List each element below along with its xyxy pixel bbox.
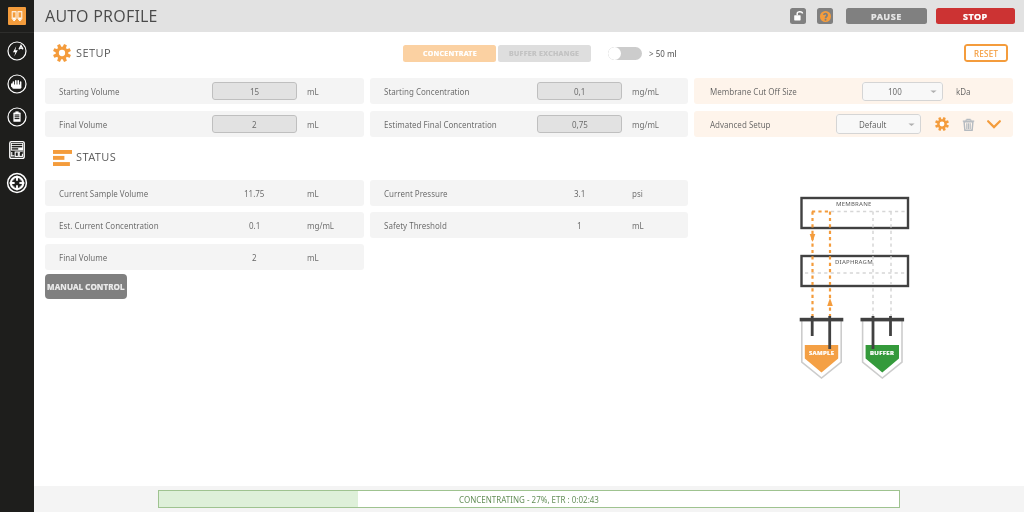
staticText: mL <box>307 188 319 199</box>
button[interactable]: Starting Volume <box>45 78 364 104</box>
button[interactable]: Est. Current Concentration <box>45 212 364 238</box>
staticText: CONCENTRATE <box>423 49 477 59</box>
staticText: PAUSE <box>871 10 902 22</box>
button[interactable]: Final Volume <box>45 244 364 270</box>
staticText: Final Volume <box>59 119 108 130</box>
button[interactable]: Safety Threshold <box>370 212 688 238</box>
staticText: RESET <box>974 48 999 59</box>
button[interactable]: Settings <box>0 166 34 199</box>
button[interactable]: Auto Profile <box>0 0 34 32</box>
button[interactable]: Membrane Cut Off Size <box>694 78 1013 104</box>
staticText: psi <box>632 188 643 199</box>
staticText: STOP <box>963 10 988 22</box>
button[interactable]: Current Sample Volume <box>45 180 364 206</box>
staticText: Safety Threshold <box>384 220 447 231</box>
staticText: Est. Current Concentration <box>59 220 159 231</box>
staticText: 0,1 <box>574 86 586 97</box>
staticText: BUFFER EXCHANGE <box>509 49 580 59</box>
button[interactable]: Expand <box>984 114 1004 134</box>
button[interactable]: Configure <box>932 114 952 134</box>
staticText: 100 <box>888 86 902 97</box>
staticText: Current Sample Volume <box>59 188 149 199</box>
button[interactable]: Estimated Final Concentration <box>370 111 688 137</box>
staticText: 15 <box>250 86 260 97</box>
staticText: mL <box>307 86 319 97</box>
button[interactable]: Current Pressure <box>370 180 688 206</box>
staticText: 0.1 <box>249 220 261 231</box>
staticText: Advanced Setup <box>710 119 771 130</box>
button[interactable]: Log <box>0 133 34 166</box>
staticText: Default <box>859 119 887 130</box>
staticText: DIAPHRAGM <box>835 258 873 266</box>
button[interactable]: Volume toggle <box>608 47 642 60</box>
staticText: 11.75 <box>244 188 265 199</box>
button[interactable]: Lock <box>790 8 806 24</box>
staticText: STATUS <box>76 149 117 164</box>
staticText: Current Pressure <box>384 188 448 199</box>
button[interactable]: Final Volume <box>45 111 364 137</box>
staticText: mg/mL <box>632 86 660 97</box>
button[interactable]: Help <box>817 8 833 24</box>
staticText: mL <box>307 119 319 130</box>
button[interactable]: STOP <box>936 8 1015 24</box>
staticText: 0,75 <box>572 119 588 130</box>
staticText: MEMBRANE <box>836 200 872 208</box>
staticText: mL <box>307 252 319 263</box>
staticText: 1 <box>577 220 582 231</box>
staticText: > 50 ml <box>649 48 677 59</box>
button[interactable]: CONCENTRATE <box>403 45 496 62</box>
button[interactable]: Auto <box>0 34 34 67</box>
staticText: Membrane Cut Off Size <box>710 86 797 97</box>
button[interactable]: PAUSE <box>846 8 927 24</box>
staticText: AUTO PROFILE <box>45 5 158 27</box>
button[interactable]: BUFFER EXCHANGE <box>498 45 591 62</box>
staticText: mL <box>632 220 644 231</box>
button[interactable]: Protocols <box>0 100 34 133</box>
button[interactable]: Starting Concentration <box>370 78 688 104</box>
staticText: 2 <box>252 252 257 263</box>
button[interactable]: Advanced preset <box>836 114 921 134</box>
staticText: Final Volume <box>59 252 108 263</box>
staticText: mg/mL <box>307 220 335 231</box>
staticText: Starting Volume <box>59 86 120 97</box>
button[interactable]: Delete <box>958 114 978 134</box>
staticText: Estimated Final Concentration <box>384 119 497 130</box>
staticText: BUFFER <box>870 349 895 357</box>
staticText: CONCENTRATING - 27%, ETR : 0:02:43 <box>459 494 599 505</box>
staticText: SAMPLE <box>809 349 835 357</box>
staticText: Starting Concentration <box>384 86 470 97</box>
button[interactable]: MANUAL CONTROL <box>45 274 127 299</box>
button[interactable]: RESET <box>964 44 1008 62</box>
staticText: mg/mL <box>632 119 660 130</box>
button[interactable]: Manual <box>0 67 34 100</box>
staticText: SETUP <box>76 45 111 60</box>
staticText: 2 <box>252 119 257 130</box>
staticText: kDa <box>956 86 971 97</box>
staticText: MANUAL CONTROL <box>47 281 125 292</box>
staticText: 3.1 <box>574 188 586 199</box>
